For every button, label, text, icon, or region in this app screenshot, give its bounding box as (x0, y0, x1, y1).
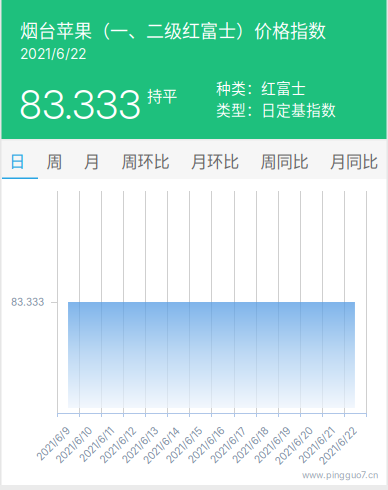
staticText: 月同比 (330, 149, 378, 172)
staticText: 周同比 (260, 149, 308, 172)
staticText: 周环比 (121, 149, 169, 172)
staticText: 种类：红富士 (216, 77, 306, 98)
staticText: 月 (84, 149, 100, 172)
staticText: 2021/6/18 (229, 444, 275, 456)
staticText: 83.333 (19, 80, 141, 129)
button[interactable]: 周环比 (121, 140, 169, 180)
button[interactable]: 月 (84, 140, 100, 180)
staticText: 持平 (147, 84, 177, 106)
staticText: 2021/6/16 (185, 444, 231, 456)
staticText: www.pingguo7.cn (302, 469, 378, 480)
button[interactable]: 周同比 (260, 140, 308, 180)
staticText: 日 (9, 149, 25, 172)
staticText: 2021/6/10 (53, 444, 99, 456)
staticText: 月环比 (191, 149, 239, 172)
staticText: 2021/6/15 (163, 444, 209, 456)
button[interactable]: 月同比 (330, 140, 378, 180)
staticText: 2021/6/11 (77, 444, 121, 456)
staticText: 83.333 (11, 296, 44, 308)
staticText: 2021/6/22 (20, 46, 86, 62)
staticText: 2021/6/20 (272, 444, 320, 456)
staticText: 2021/6/19 (251, 444, 297, 456)
staticText: 类型：日定基指数 (216, 99, 336, 120)
button[interactable]: 日 (9, 140, 25, 180)
button[interactable]: 周 (46, 140, 62, 180)
staticText: 周 (46, 149, 62, 172)
staticText: 2021/6/22 (316, 444, 364, 456)
staticText: 2021/6/9 (35, 444, 77, 456)
staticText: 2021/6/13 (119, 444, 165, 456)
staticText: 烟台苹果（一、二级红富士）价格指数 (20, 17, 326, 43)
staticText: 2021/6/17 (207, 444, 253, 456)
button[interactable]: 月环比 (191, 140, 239, 180)
staticText: 2021/6/14 (140, 444, 187, 456)
staticText: 2021/6/21 (296, 444, 342, 456)
staticText: 2021/6/12 (97, 444, 143, 456)
